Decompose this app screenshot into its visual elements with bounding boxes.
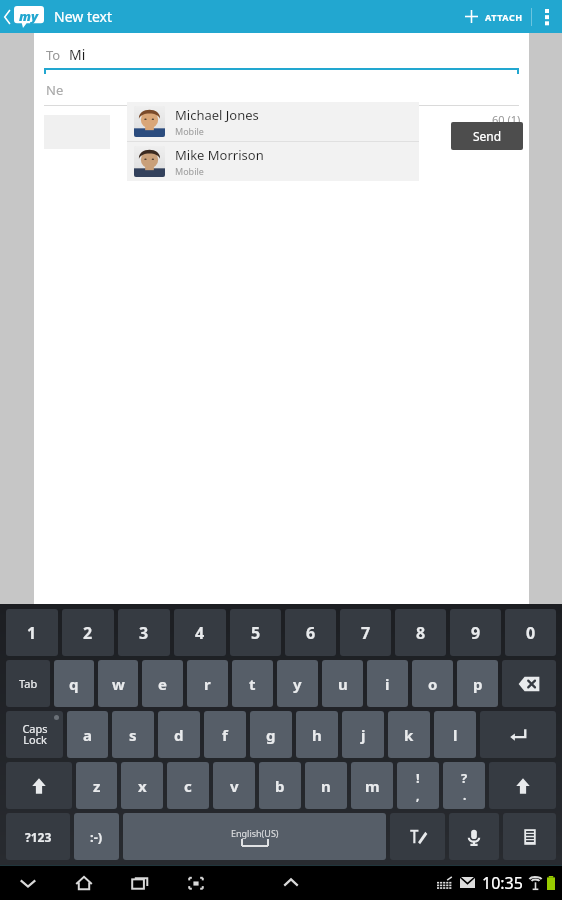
- staticText: 4: [195, 622, 205, 644]
- button[interactable]: o: [412, 660, 453, 707]
- staticText: a: [83, 725, 92, 745]
- staticText: .: [463, 787, 467, 803]
- staticText: To: [46, 46, 61, 64]
- staticText: q: [69, 674, 79, 694]
- button[interactable]: Caps Lock: [6, 711, 63, 758]
- button[interactable]: j: [342, 711, 384, 758]
- button[interactable]: c: [167, 762, 209, 809]
- button[interactable]: Michael Jones: [127, 102, 419, 141]
- staticText: g: [266, 725, 276, 745]
- button[interactable]: e: [142, 660, 183, 707]
- staticText: l: [453, 725, 458, 745]
- button[interactable]: Shift: [489, 762, 556, 809]
- button[interactable]: ?: [443, 762, 485, 809]
- staticText: r: [204, 674, 211, 694]
- button[interactable]: 0: [505, 609, 556, 656]
- button[interactable]: More options: [532, 0, 562, 33]
- button[interactable]: Screenshot: [168, 865, 224, 900]
- button[interactable]: Voice input: [449, 813, 499, 860]
- staticText: w: [112, 674, 125, 694]
- button[interactable]: 3: [118, 609, 170, 656]
- staticText: j: [361, 725, 366, 745]
- button[interactable]: 5: [230, 609, 281, 656]
- staticText: Mike Morrison: [175, 146, 264, 164]
- staticText: Caps Lock: [22, 721, 48, 748]
- button[interactable]: f: [204, 711, 246, 758]
- button[interactable]: 9: [450, 609, 501, 656]
- button[interactable]: h: [296, 711, 338, 758]
- staticText: New text: [54, 7, 113, 26]
- button[interactable]: Up, My SMS: [0, 6, 50, 28]
- button[interactable]: m: [351, 762, 393, 809]
- staticText: u: [338, 674, 348, 694]
- staticText: z: [93, 776, 101, 796]
- staticText: m: [365, 776, 380, 796]
- staticText: o: [428, 674, 438, 694]
- button[interactable]: y: [277, 660, 318, 707]
- button[interactable]: w: [98, 660, 138, 707]
- button[interactable]: g: [250, 711, 292, 758]
- button[interactable]: b: [259, 762, 301, 809]
- button[interactable]: English(US): [123, 813, 386, 860]
- button[interactable]: 1: [6, 609, 58, 656]
- staticText: v: [230, 776, 239, 796]
- staticText: 9: [471, 622, 481, 644]
- button[interactable]: 2: [62, 609, 114, 656]
- staticText: Mobile: [175, 125, 204, 137]
- button[interactable]: k: [388, 711, 430, 758]
- staticText: p: [473, 674, 483, 694]
- button[interactable]: t: [232, 660, 273, 707]
- staticText: e: [158, 674, 167, 694]
- button[interactable]: l: [434, 711, 476, 758]
- staticText: t: [249, 674, 256, 694]
- staticText: c: [184, 776, 192, 796]
- staticText: 0: [526, 622, 536, 644]
- button[interactable]: n: [305, 762, 347, 809]
- button[interactable]: u: [322, 660, 363, 707]
- staticText: 5: [251, 622, 261, 644]
- button[interactable]: a: [67, 711, 108, 758]
- staticText: 7: [361, 622, 371, 644]
- button[interactable]: Send: [451, 122, 523, 150]
- button[interactable]: Clipboard: [503, 813, 556, 860]
- staticText: Ne: [46, 81, 64, 99]
- button[interactable]: x: [121, 762, 163, 809]
- button[interactable]: 6: [285, 609, 336, 656]
- staticText: !: [416, 769, 420, 787]
- button[interactable]: 4: [174, 609, 226, 656]
- button[interactable]: Home: [56, 865, 112, 900]
- button[interactable]: Handwriting: [390, 813, 445, 860]
- button[interactable]: Enter: [480, 711, 556, 758]
- button[interactable]: d: [158, 711, 200, 758]
- staticText: ,: [416, 787, 420, 803]
- button[interactable]: p: [457, 660, 498, 707]
- button[interactable]: 7: [340, 609, 391, 656]
- button[interactable]: z: [76, 762, 117, 809]
- button[interactable]: 8: [395, 609, 446, 656]
- button[interactable]: Shift: [6, 762, 72, 809]
- button[interactable]: Backspace: [502, 660, 556, 707]
- button[interactable]: q: [54, 660, 94, 707]
- button[interactable]: s: [112, 711, 154, 758]
- staticText: 10:35: [482, 872, 523, 894]
- staticText: 2: [83, 622, 93, 644]
- button[interactable]: ATTACH: [456, 0, 531, 33]
- button[interactable]: i: [367, 660, 408, 707]
- staticText: ?: [461, 769, 468, 787]
- button[interactable]: Back: [0, 865, 56, 900]
- staticText: Mobile: [175, 165, 204, 177]
- button[interactable]: Hide keyboard: [266, 865, 316, 900]
- button[interactable]: !: [397, 762, 439, 809]
- button[interactable]: Tab: [6, 660, 50, 707]
- button[interactable]: :-): [74, 813, 119, 860]
- button[interactable]: r: [187, 660, 228, 707]
- staticText: b: [275, 776, 285, 796]
- button[interactable]: ?123: [6, 813, 70, 860]
- staticText: 60 (1): [492, 112, 521, 127]
- staticText: 1: [27, 622, 37, 644]
- button[interactable]: Mike Morrison: [127, 142, 419, 181]
- button[interactable]: v: [213, 762, 255, 809]
- staticText: y: [293, 674, 302, 694]
- button[interactable]: Recent apps: [112, 865, 168, 900]
